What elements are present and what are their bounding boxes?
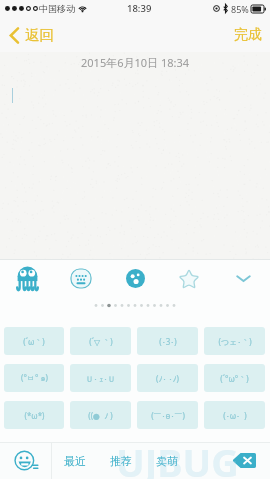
staticText: 返回: [25, 26, 54, 44]
button[interactable]: ((● ﾉ ): [70, 401, 131, 429]
staticText: (･3･): [159, 336, 177, 347]
staticText: 中国移动: [39, 3, 75, 14]
button[interactable]: Keyboard: [54, 260, 108, 297]
button[interactable]: (･3･): [137, 327, 198, 355]
button[interactable]: (￣･ө･￣): [137, 401, 198, 429]
staticText: 推荐: [110, 454, 132, 468]
button[interactable]: Kaomoji: [0, 260, 54, 297]
staticText: (･ω･ ): [223, 410, 247, 421]
staticText: 完成: [234, 26, 262, 44]
staticText: (￣･ө･￣): [151, 410, 185, 421]
button[interactable]: Emoji: [108, 260, 162, 297]
staticText: (´ω｀): [23, 336, 45, 347]
button[interactable]: 卖萌: [144, 442, 190, 479]
staticText: (*ω*): [24, 410, 45, 421]
staticText: UJBUG: [116, 436, 239, 479]
button[interactable]: Ｕ･ ｪ･Ｕ: [70, 364, 131, 392]
button[interactable]: (´ω｀): [4, 327, 64, 355]
button[interactable]: (･ω･ ): [204, 401, 265, 429]
staticText: (°ㅂ° ๑): [21, 372, 48, 385]
staticText: 卖萌: [156, 454, 178, 468]
staticText: Ｕ･ ｪ･Ｕ: [85, 373, 116, 384]
staticText: 85%: [231, 3, 249, 15]
staticText: (´°ω°｀): [220, 373, 249, 384]
button[interactable]: Emoji: [0, 442, 51, 479]
button[interactable]: Favorites: [162, 260, 216, 297]
staticText: (ﾉ･ ･ﾉ): [156, 373, 179, 384]
button[interactable]: Collapse: [216, 260, 270, 297]
button[interactable]: 完成: [226, 22, 270, 48]
button[interactable]: 返回: [9, 26, 54, 44]
button[interactable]: 推荐: [98, 442, 144, 479]
button[interactable]: (ﾉ･ ･ﾉ): [137, 364, 198, 392]
button[interactable]: (°ㅂ° ๑): [4, 364, 64, 392]
button[interactable]: (*ω*): [4, 401, 64, 429]
staticText: (つェ･｀): [218, 336, 252, 347]
staticText: 18:39: [127, 2, 152, 15]
button[interactable]: (´°ω°｀): [204, 364, 265, 392]
staticText: 2015年6月10日 18:34: [81, 55, 190, 70]
button[interactable]: (´▽ ｀): [70, 327, 131, 355]
staticText: ((● ﾉ ): [88, 410, 113, 421]
button[interactable]: Backspace: [218, 442, 270, 479]
button[interactable]: 最近: [52, 442, 98, 479]
button[interactable]: (つェ･｀): [204, 327, 265, 355]
staticText: 最近: [64, 454, 86, 468]
staticText: (´▽ ｀): [89, 336, 113, 347]
